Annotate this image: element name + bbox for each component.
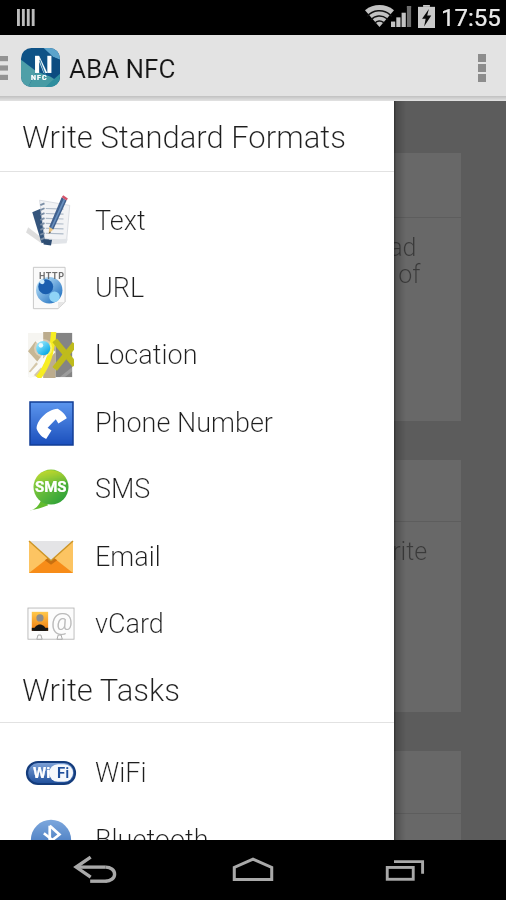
staticText: HTTP xyxy=(39,271,65,282)
staticText: Read data from a tag, or download then u… xyxy=(39,233,421,315)
staticText: Create tasks which are able to write sev… xyxy=(39,537,428,593)
staticText: 17:55 xyxy=(441,4,501,32)
staticText: Write Tasks xyxy=(22,672,180,708)
staticText: Location xyxy=(95,339,198,371)
staticText: Write Standard Formats xyxy=(22,119,346,155)
button[interactable]: Text xyxy=(0,187,394,254)
button[interactable]: Bluetooth xyxy=(0,806,394,873)
button[interactable]: Wi xyxy=(0,739,394,806)
button[interactable]: Back xyxy=(44,840,154,900)
button[interactable]: Location xyxy=(0,321,394,388)
button[interactable]: Recent apps xyxy=(352,840,462,900)
staticText: Bluetooth xyxy=(95,824,209,856)
button[interactable]: @ xyxy=(0,590,394,657)
staticText: ABA NFC xyxy=(69,54,176,84)
staticText: URL xyxy=(95,272,145,304)
button[interactable]: More options xyxy=(458,35,506,101)
button[interactable]: HTTP xyxy=(0,254,394,321)
button[interactable]: SMS xyxy=(0,455,394,522)
staticText: vCard xyxy=(95,608,164,640)
staticText: Phone Number xyxy=(95,407,273,439)
staticText: NFC xyxy=(31,74,48,82)
staticText: SMS xyxy=(35,478,67,496)
staticText: Fi xyxy=(57,764,70,782)
button[interactable]: Navigation drawer xyxy=(0,35,24,101)
staticText: WiFi xyxy=(95,757,147,789)
button[interactable]: Email xyxy=(0,523,394,590)
staticText: SMS xyxy=(95,473,151,505)
staticText: Wi xyxy=(33,764,51,782)
button[interactable]: Phone Number xyxy=(0,389,394,456)
staticText: @ xyxy=(51,608,73,636)
staticText: Email xyxy=(95,541,161,573)
staticText: Text xyxy=(95,205,146,237)
button[interactable]: Home xyxy=(198,840,308,900)
